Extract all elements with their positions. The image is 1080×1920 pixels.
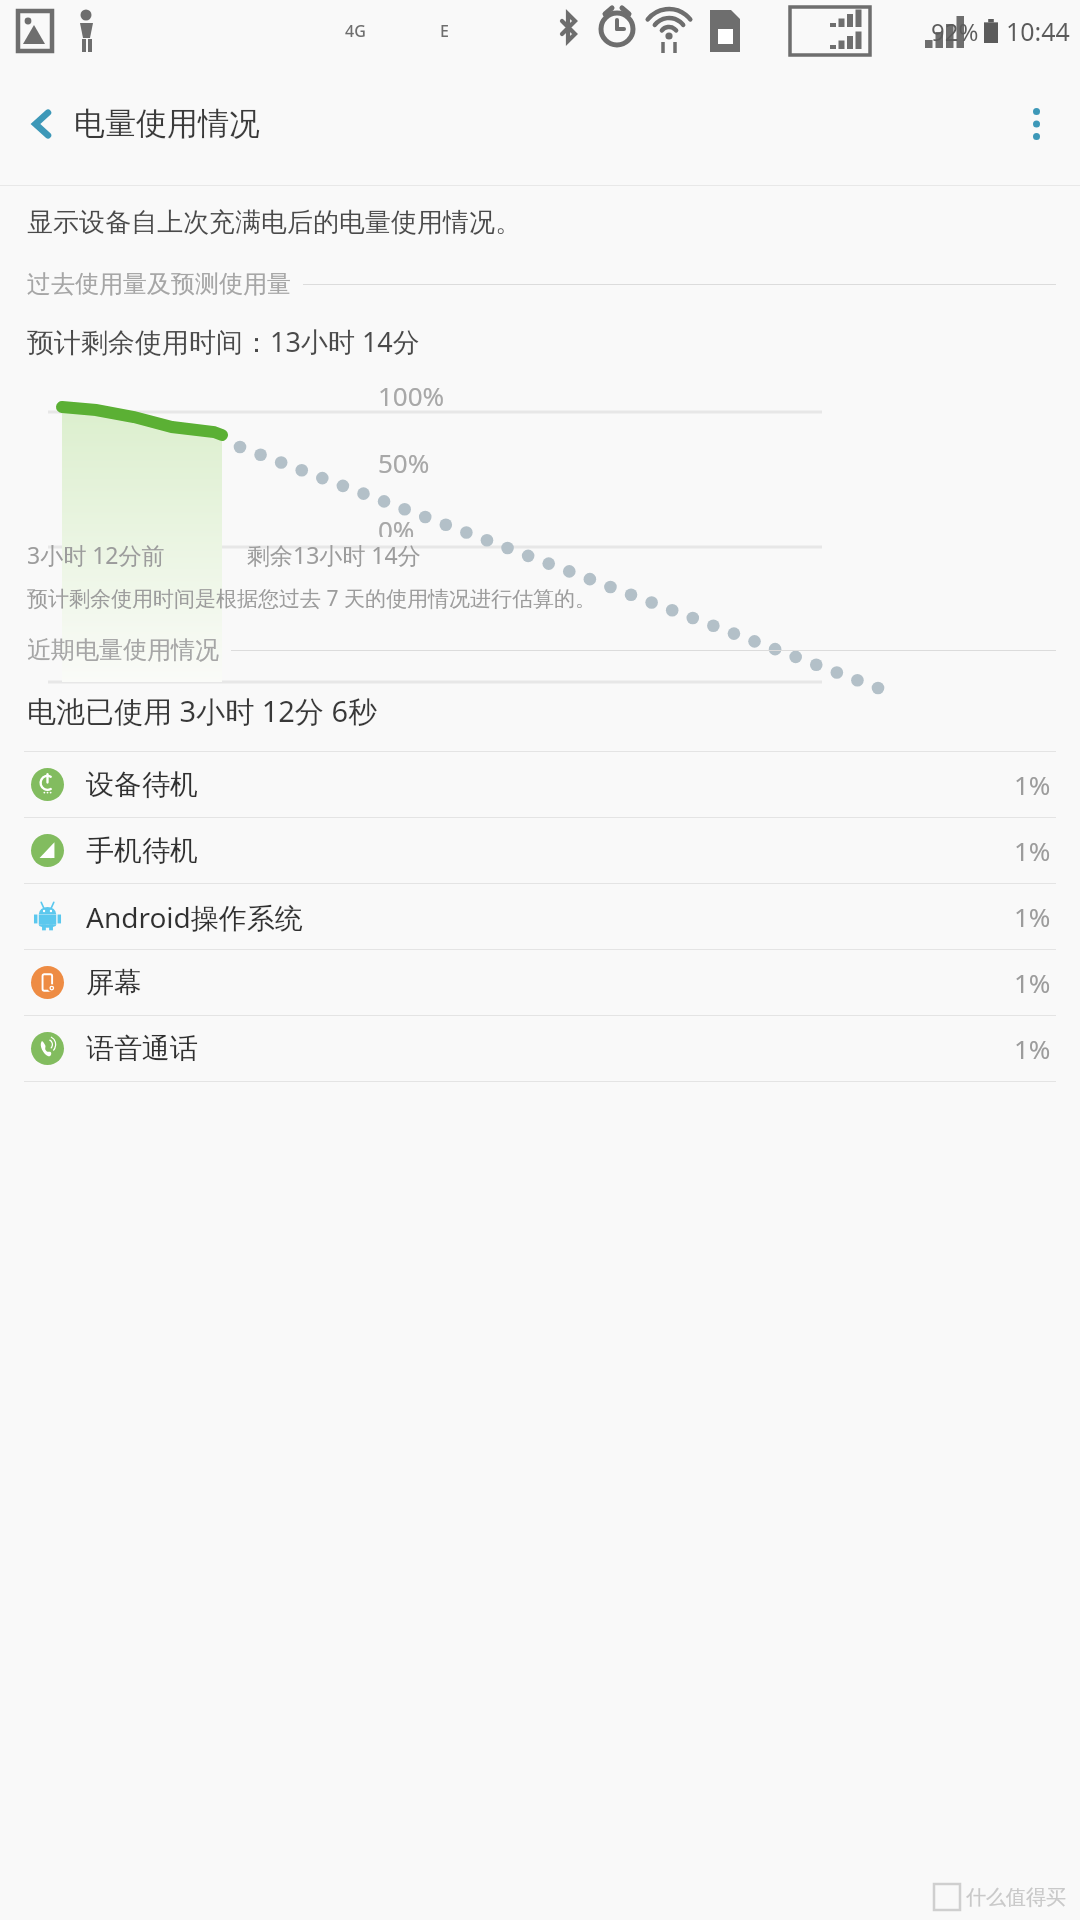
staticText: 设备待机 [86,767,198,802]
staticText: 1% [1014,899,1051,934]
staticText: 1% [1014,767,1051,802]
button[interactable]: 手机待机 [0,818,1080,883]
button[interactable]: Android操作系统 [0,884,1080,949]
staticText: 3小时 12分前 [27,539,165,570]
button[interactable]: Back [12,94,72,154]
staticText: 显示设备自上次充满电后的电量使用情况。 [27,206,521,239]
staticText: 4G [345,20,366,42]
staticText: 预计剩余使用时间：13小时 14分 [27,323,420,360]
staticText: 电池已使用 3小时 12分 6秒 [27,691,377,731]
staticText: 100% [378,378,445,413]
staticText: 手机待机 [86,833,198,868]
staticText: 剩余13小时 14分 [247,539,421,570]
staticText: 92% [931,15,979,48]
button[interactable]: 屏幕 [0,950,1080,1015]
button[interactable]: 设备待机 [0,752,1080,817]
staticText: Android操作系统 [86,898,303,936]
staticText: 0% [378,512,415,537]
button[interactable]: More options [1006,94,1066,154]
staticText: 1% [1014,1031,1051,1066]
staticText: E [440,20,449,42]
button[interactable]: 语音通话 [0,1016,1080,1081]
staticText: 什么值得买 [966,1885,1066,1910]
staticText: 屏幕 [86,965,142,1000]
staticText: 近期电量使用情况 [27,635,219,665]
staticText: 1% [1014,965,1051,1000]
staticText: 预计剩余使用时间是根据您过去 7 天的使用情况进行估算的。 [27,584,596,613]
staticText: 1% [1014,833,1051,868]
staticText: 过去使用量及预测使用量 [27,269,291,299]
staticText: 50% [378,445,430,480]
staticText: 10:44 [1006,14,1070,48]
staticText: 电量使用情况 [74,104,260,143]
staticText: 语音通话 [86,1031,198,1066]
